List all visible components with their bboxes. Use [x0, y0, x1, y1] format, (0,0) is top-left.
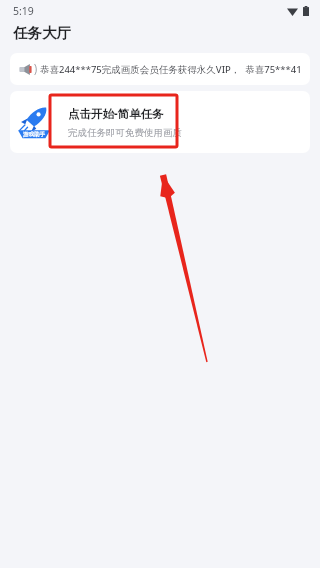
staticText: 点击开始-简单任务: [68, 106, 164, 122]
staticText: 完成任务即可免费使用画质: [68, 127, 182, 139]
button[interactable]: Announcement: [10, 53, 310, 85]
staticText: 任务大厅: [13, 24, 71, 42]
button[interactable]: Task rocket: [10, 91, 310, 153]
staticText: 游戏助手: [23, 131, 45, 138]
other: Task rocket: [15, 103, 53, 141]
staticText: 恭喜244***75完成画质会员任务获得永久VIP， 恭喜75***41完成画质…: [40, 63, 304, 76]
other: Announcement: [18, 61, 35, 78]
staticText: 5:19: [13, 4, 34, 18]
